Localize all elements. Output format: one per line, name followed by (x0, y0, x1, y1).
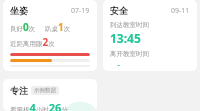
staticText: 安全 (110, 5, 128, 16)
staticText: 近距离用眼2次 (10, 35, 55, 49)
staticText: 趴桌1次 (45, 20, 71, 34)
staticText: 看黑板4小时26分 (10, 100, 68, 111)
staticText: 13:45 (110, 30, 141, 46)
staticText: 坐姿 (10, 5, 28, 16)
staticText: 良好0次 (10, 20, 36, 34)
staticText: 到达教室时间 (110, 21, 149, 29)
button[interactable]: 专注 (3, 79, 97, 111)
staticText: --:-- (110, 59, 128, 66)
staticText: 示例数据 (34, 87, 56, 94)
staticText: 专注 (10, 85, 28, 96)
staticText: 07-19 (71, 6, 90, 16)
staticText: 09-11 (171, 6, 190, 16)
button[interactable]: 安全 (103, 0, 197, 71)
button[interactable]: 坐姿 (3, 0, 97, 71)
staticText: 离开教室时间 (110, 50, 149, 58)
